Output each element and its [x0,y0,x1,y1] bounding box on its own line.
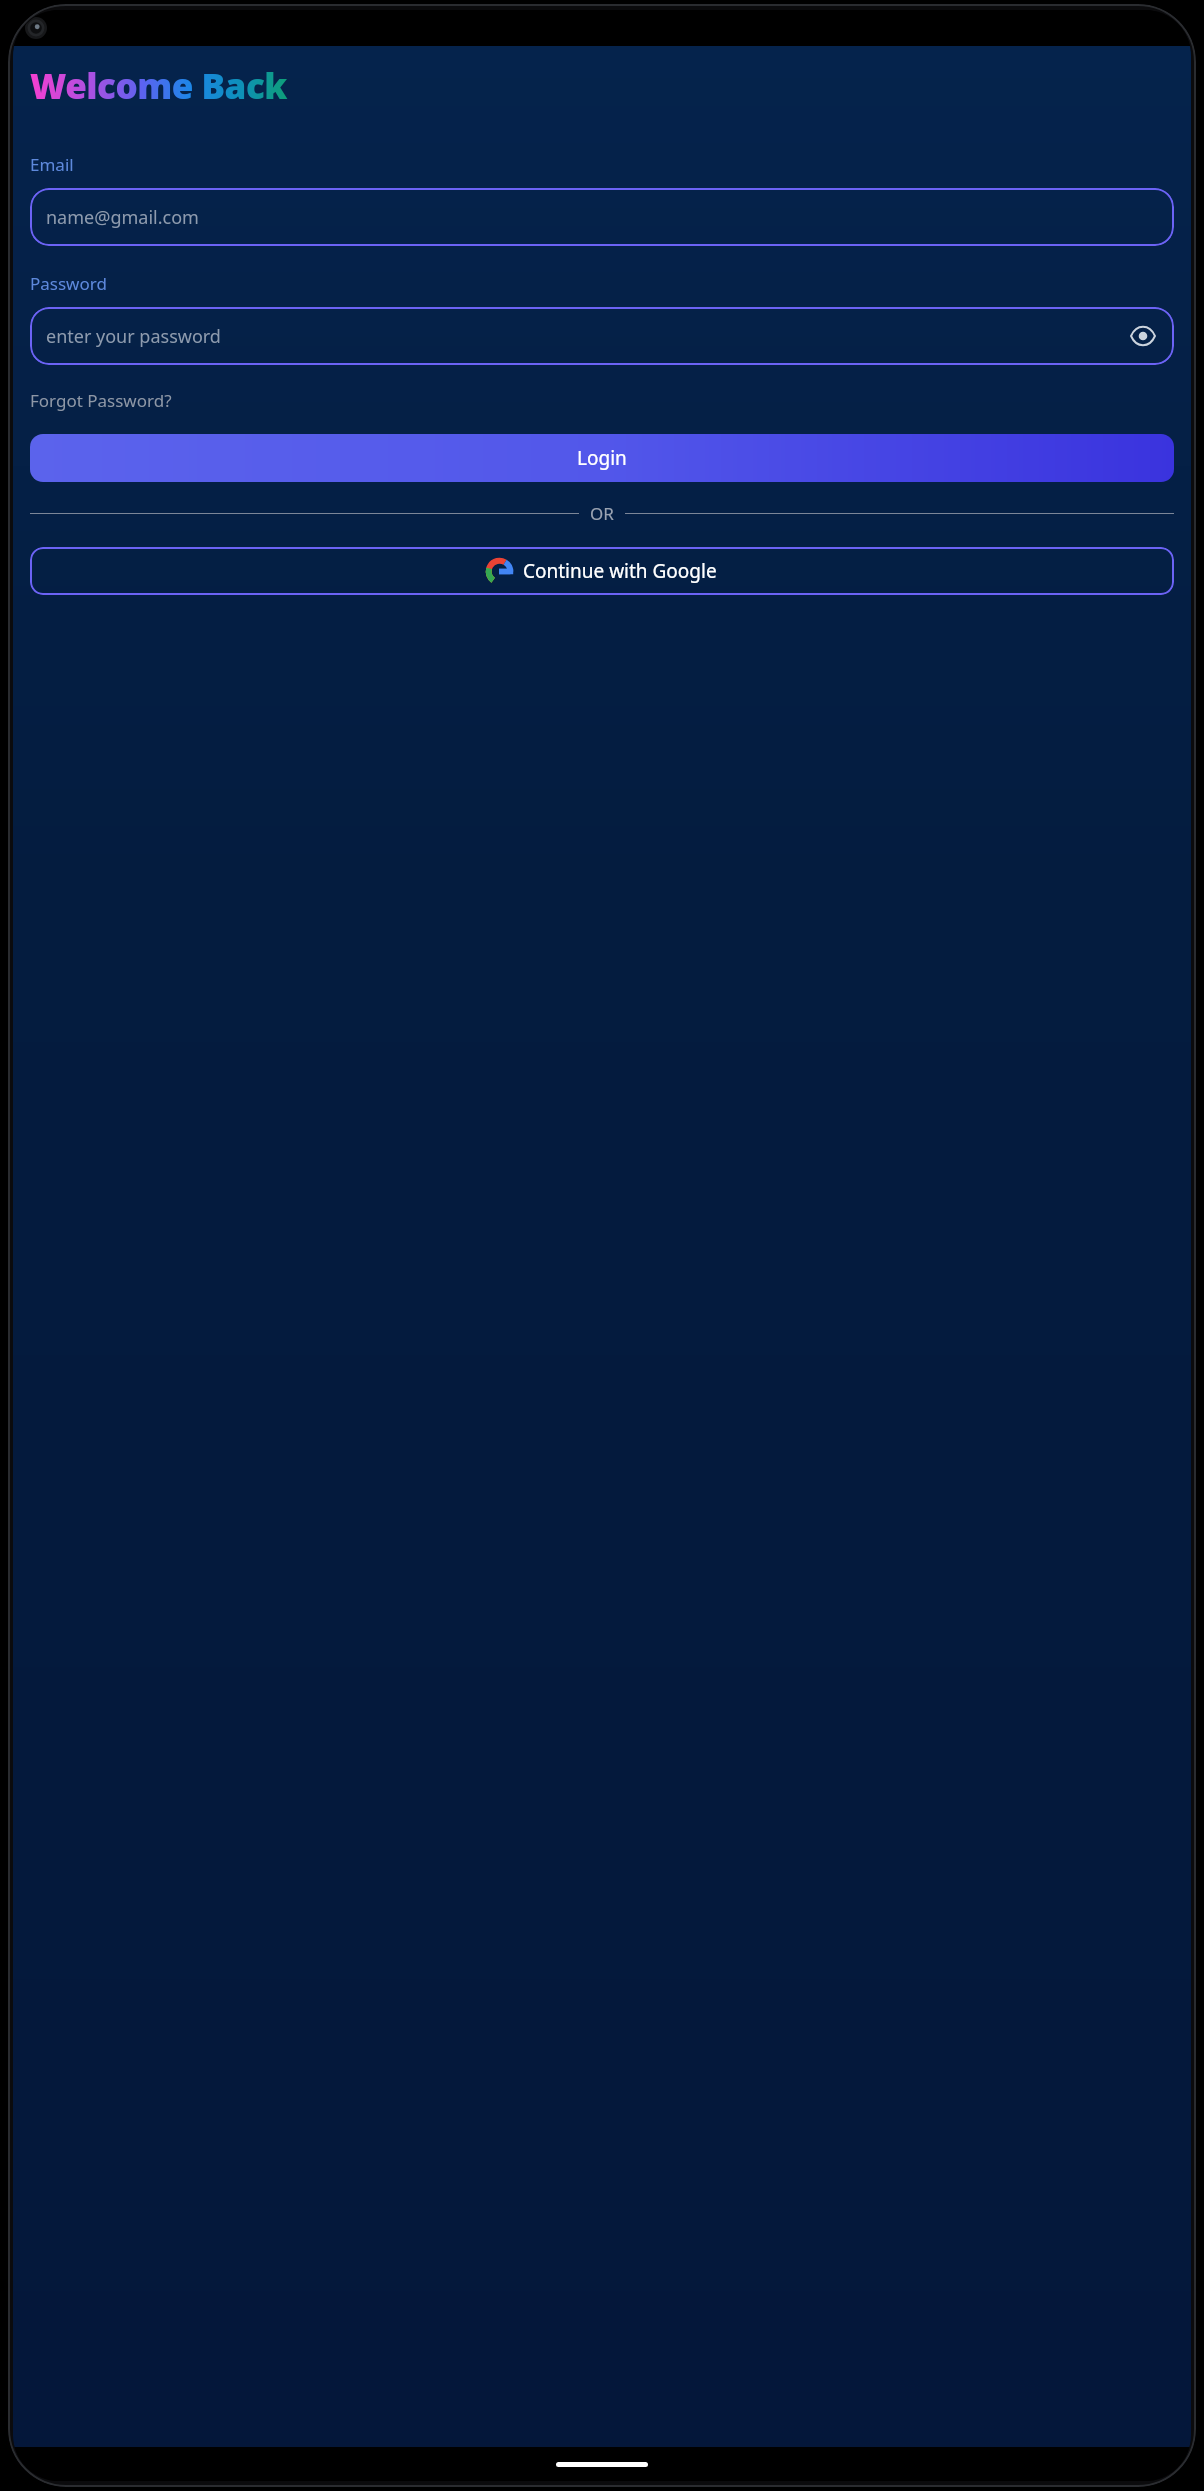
button[interactable]: Login [30,434,1174,482]
staticText: Email [30,153,74,176]
staticText: Forgot Password? [30,389,172,412]
button[interactable]: enter your password [30,307,1174,365]
staticText: OR [590,502,614,525]
staticText: name@gmail.com [46,205,1160,230]
button[interactable]: Forgot Password? [30,387,172,414]
staticText: Login [577,445,627,471]
staticText: Password [30,272,107,295]
button[interactable]: Show password [1126,319,1160,353]
staticText: Welcome Back [30,62,287,110]
button[interactable]: name@gmail.com [30,188,1174,246]
staticText: enter your password [46,324,1126,349]
button[interactable]: Continue with Google [30,547,1174,595]
staticText: Continue with Google [523,558,717,584]
